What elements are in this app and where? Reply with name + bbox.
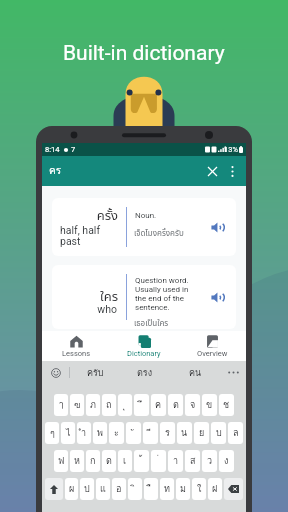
button[interactable]: ป bbox=[80, 478, 94, 500]
staticText: ถ bbox=[106, 398, 112, 412]
button[interactable]: Clear search bbox=[202, 161, 222, 181]
staticText: ะ bbox=[114, 426, 119, 440]
button[interactable]: ครั้ง bbox=[52, 198, 236, 256]
button[interactable]: Lessons bbox=[42, 331, 110, 361]
button[interactable]: Shift bbox=[45, 478, 63, 500]
staticText: 13% bbox=[224, 145, 238, 154]
staticText: ฟ bbox=[58, 454, 65, 468]
button[interactable]: ใ bbox=[192, 478, 206, 500]
button[interactable]: ง bbox=[219, 450, 234, 472]
button[interactable]: ี bbox=[143, 422, 158, 444]
button[interactable]: ภ bbox=[86, 394, 100, 416]
staticText: ห bbox=[74, 454, 80, 468]
button[interactable]: ย bbox=[194, 422, 209, 444]
staticText: ใ bbox=[197, 482, 202, 496]
staticText: ใคร bbox=[58, 287, 118, 307]
button[interactable]: ส bbox=[185, 450, 200, 472]
staticText: ก bbox=[90, 454, 96, 468]
staticText: แ bbox=[100, 482, 106, 496]
staticText: ไ bbox=[66, 426, 71, 440]
staticText: ครับ bbox=[87, 366, 104, 380]
staticText: ว bbox=[207, 454, 213, 468]
staticText: Question word. Usually used in the end o… bbox=[135, 276, 207, 312]
staticText: ง bbox=[224, 454, 229, 468]
staticText: half, half past bbox=[60, 224, 117, 247]
button[interactable]: ึ bbox=[134, 394, 149, 416]
staticText: ย bbox=[199, 426, 205, 440]
button[interactable]: ว bbox=[202, 450, 217, 472]
button[interactable]: Emoji keyboard bbox=[42, 361, 69, 384]
staticText: เจ็ดโมงครึ่งครับ bbox=[134, 228, 216, 240]
button[interactable]: ค bbox=[151, 394, 166, 416]
button[interactable]: บ bbox=[211, 422, 226, 444]
staticText: ผ bbox=[69, 482, 75, 496]
staticText: คน bbox=[189, 366, 202, 380]
button[interactable]: ผ bbox=[65, 478, 78, 500]
button[interactable]: ม bbox=[176, 478, 190, 500]
button[interactable]: เ bbox=[118, 450, 132, 472]
button[interactable]: ล bbox=[228, 422, 243, 444]
staticText: ร bbox=[165, 426, 170, 440]
button[interactable]: พ bbox=[93, 422, 107, 444]
staticText: ท bbox=[164, 482, 170, 496]
button[interactable]: ฝ bbox=[208, 478, 222, 500]
button[interactable]: Play pronunciation bbox=[206, 285, 230, 309]
button[interactable]: ท bbox=[160, 478, 174, 500]
button[interactable]: ำ bbox=[77, 422, 91, 444]
button[interactable]: More suggestions bbox=[220, 361, 246, 384]
button[interactable]: ุ bbox=[118, 394, 132, 416]
button[interactable]: คน bbox=[170, 361, 220, 384]
button[interactable]: ั bbox=[126, 422, 141, 444]
button[interactable]: Overview bbox=[178, 331, 246, 361]
staticText: น bbox=[181, 426, 188, 440]
staticText: ค bbox=[155, 398, 162, 412]
staticText: พ bbox=[97, 426, 103, 440]
button[interactable]: ฟ bbox=[54, 450, 68, 472]
button[interactable]: ช bbox=[219, 394, 234, 416]
button[interactable]: Play pronunciation bbox=[206, 215, 230, 239]
button[interactable]: จ bbox=[185, 394, 200, 416]
button[interactable]: ร bbox=[160, 422, 175, 444]
staticText: ด bbox=[106, 454, 112, 468]
staticText: เธอเป็นใคร bbox=[134, 318, 216, 329]
button[interactable]: ด bbox=[102, 450, 116, 472]
button[interactable]: Dictionary bbox=[110, 331, 178, 361]
button[interactable]: ไ bbox=[61, 422, 75, 444]
staticText: Dictionary bbox=[127, 349, 161, 358]
button[interactable]: ๅ bbox=[54, 394, 68, 416]
staticText: ฃ bbox=[74, 398, 81, 412]
button[interactable]: ข bbox=[202, 394, 217, 416]
button[interactable]: ื bbox=[144, 478, 158, 500]
staticText: ข bbox=[206, 398, 213, 412]
button[interactable]: Backspace bbox=[224, 478, 243, 500]
button[interactable]: ถ bbox=[102, 394, 116, 416]
button[interactable]: ๆ bbox=[45, 422, 59, 444]
staticText: Built-in dictionary bbox=[63, 41, 225, 66]
button[interactable]: ตรง bbox=[120, 361, 170, 384]
staticText: ต bbox=[173, 398, 179, 412]
button[interactable]: ครับ bbox=[70, 361, 120, 384]
button[interactable]: า bbox=[168, 450, 183, 472]
button[interactable]: ะ bbox=[109, 422, 124, 444]
staticText: บ bbox=[216, 426, 222, 440]
button[interactable]: ิ bbox=[128, 478, 142, 500]
staticText: 8:14 bbox=[45, 145, 60, 154]
staticText: า bbox=[173, 454, 179, 468]
button[interactable]: ต bbox=[168, 394, 183, 416]
staticText: ม bbox=[180, 482, 186, 496]
button[interactable]: More options bbox=[224, 163, 240, 179]
button[interactable]: ฃ bbox=[70, 394, 84, 416]
staticText: ำ bbox=[81, 426, 87, 440]
staticText: คร bbox=[49, 163, 62, 179]
button[interactable]: ้ bbox=[134, 450, 149, 472]
button[interactable]: น bbox=[177, 422, 192, 444]
button[interactable]: อ bbox=[112, 478, 126, 500]
staticText: เ bbox=[123, 454, 127, 468]
button[interactable]: ใคร bbox=[52, 265, 236, 329]
button[interactable]: ก bbox=[86, 450, 100, 472]
button[interactable]: ห bbox=[70, 450, 84, 472]
button[interactable]: ่ bbox=[151, 450, 166, 472]
button[interactable]: แ bbox=[96, 478, 110, 500]
staticText: ป bbox=[84, 482, 90, 496]
staticText: อ bbox=[116, 482, 122, 496]
